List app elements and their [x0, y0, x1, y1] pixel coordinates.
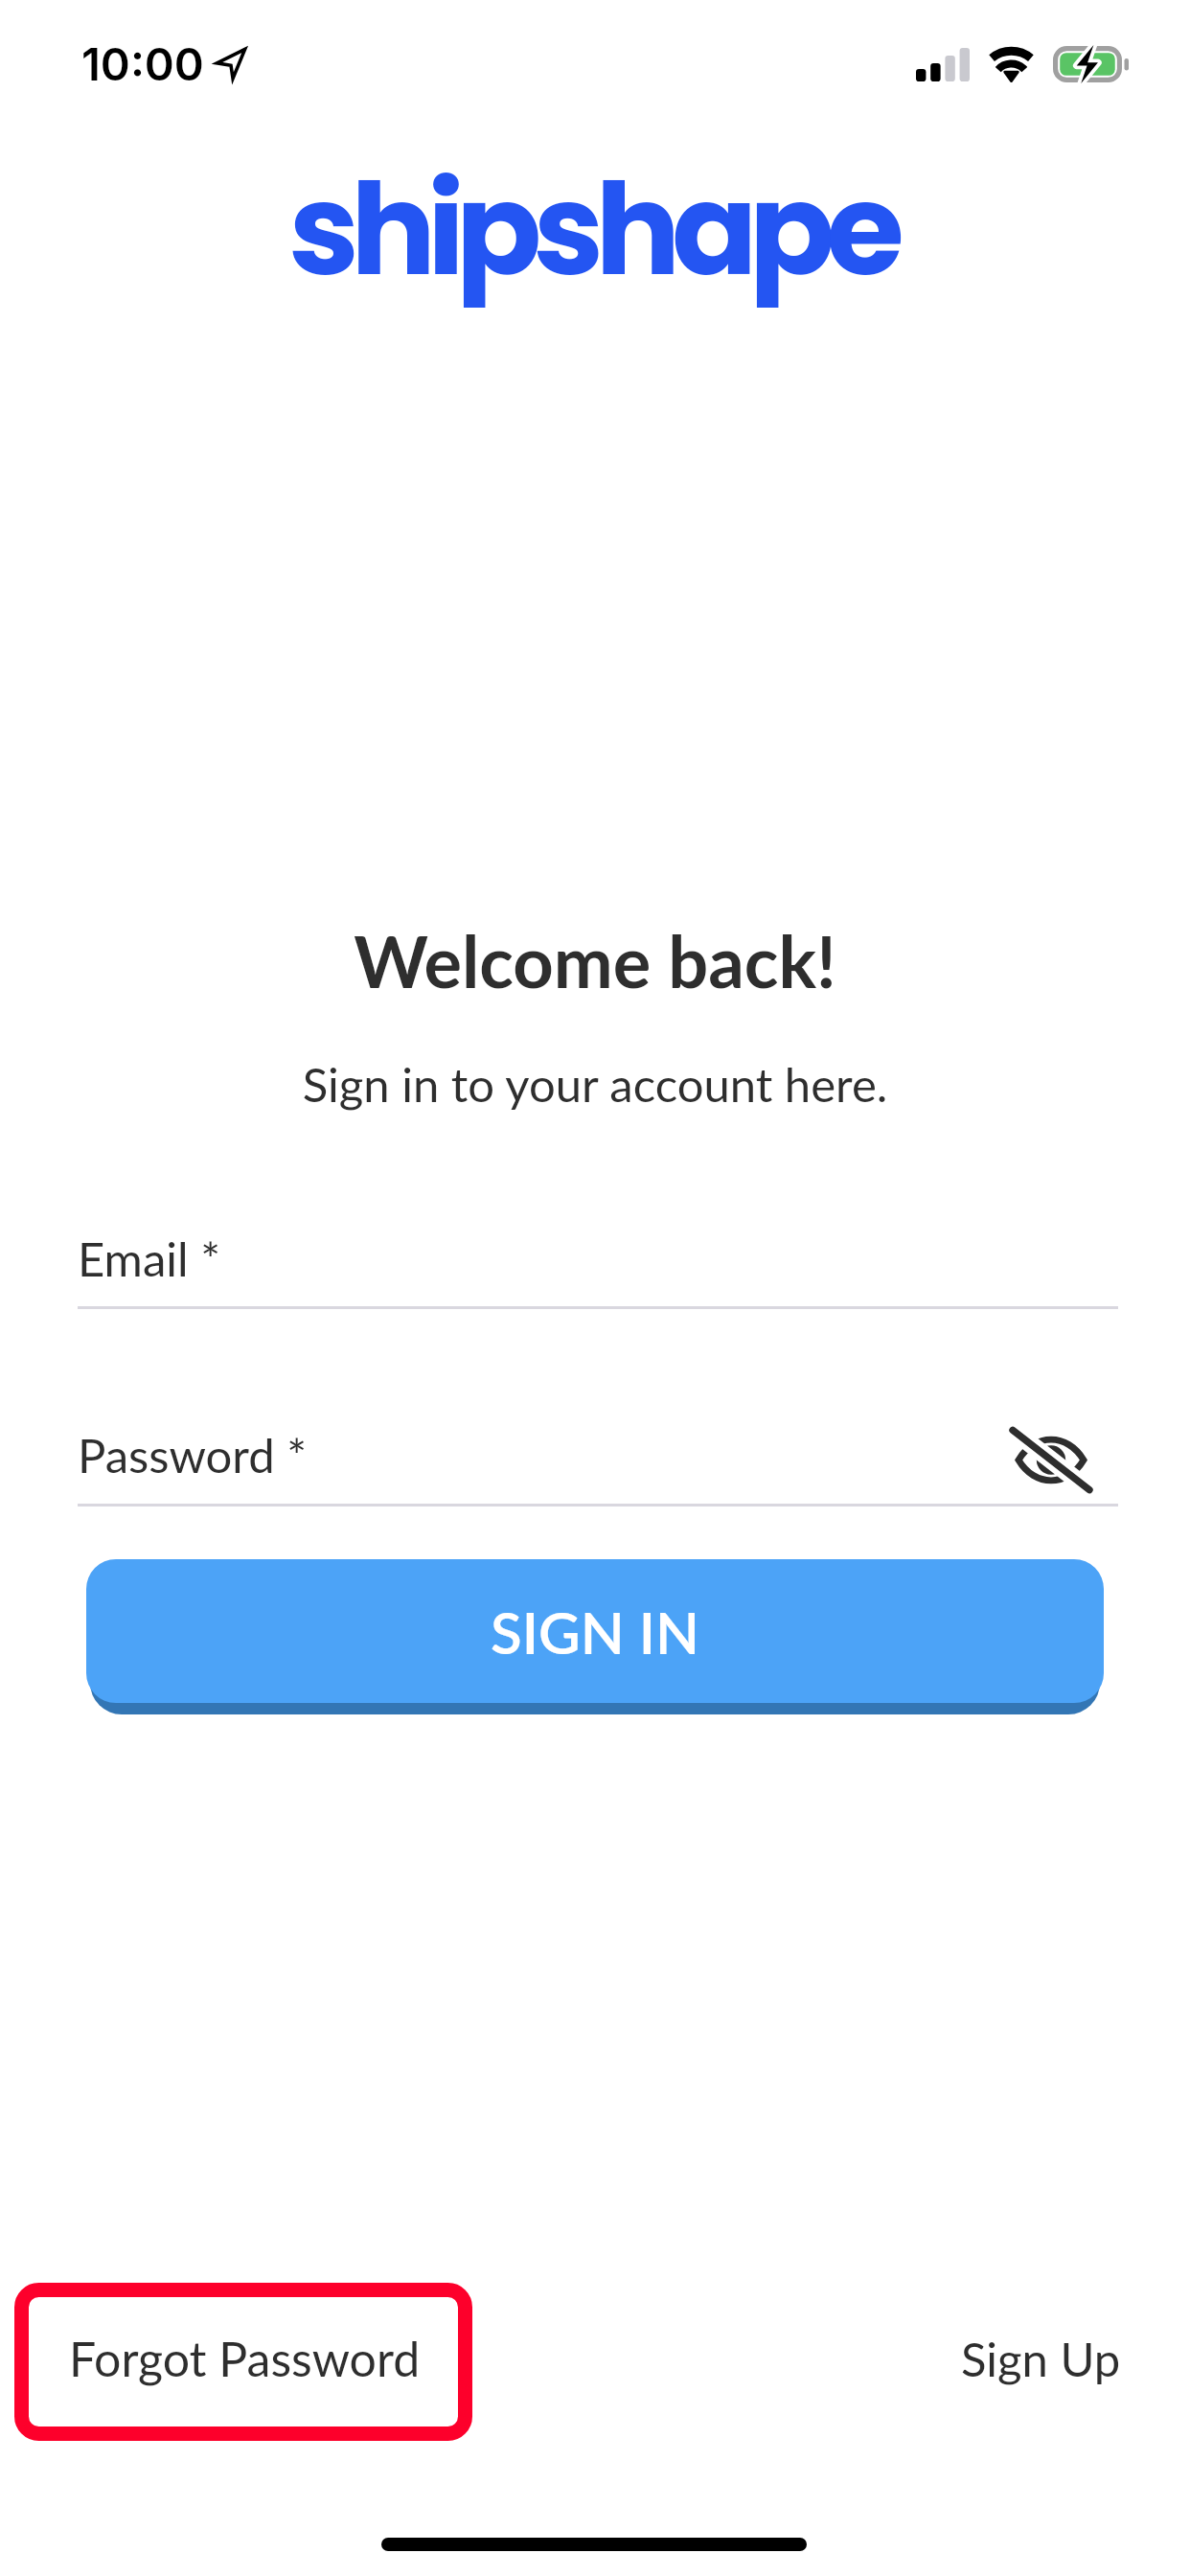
- staticText: 10:00: [81, 36, 204, 91]
- button[interactable]: Show password: [1001, 1415, 1101, 1504]
- staticText: SIGN IN: [86, 1598, 1104, 1667]
- button[interactable]: Sign Up: [909, 2283, 1174, 2441]
- staticText: Sign Up: [961, 2331, 1121, 2387]
- button[interactable]: Email *: [78, 1219, 1118, 1309]
- staticText: shipshape: [0, 141, 1187, 318]
- button[interactable]: Password *: [78, 1415, 1118, 1506]
- staticText: Forgot Password: [69, 2330, 421, 2387]
- staticText: Email *: [78, 1230, 220, 1287]
- staticText: Password *: [78, 1427, 308, 1483]
- staticText: Welcome back!: [0, 918, 1190, 1003]
- staticText: Sign in to your account here.: [0, 1056, 1190, 1113]
- button[interactable]: Forgot Password: [14, 2283, 472, 2441]
- button[interactable]: SIGN IN: [86, 1559, 1104, 1703]
